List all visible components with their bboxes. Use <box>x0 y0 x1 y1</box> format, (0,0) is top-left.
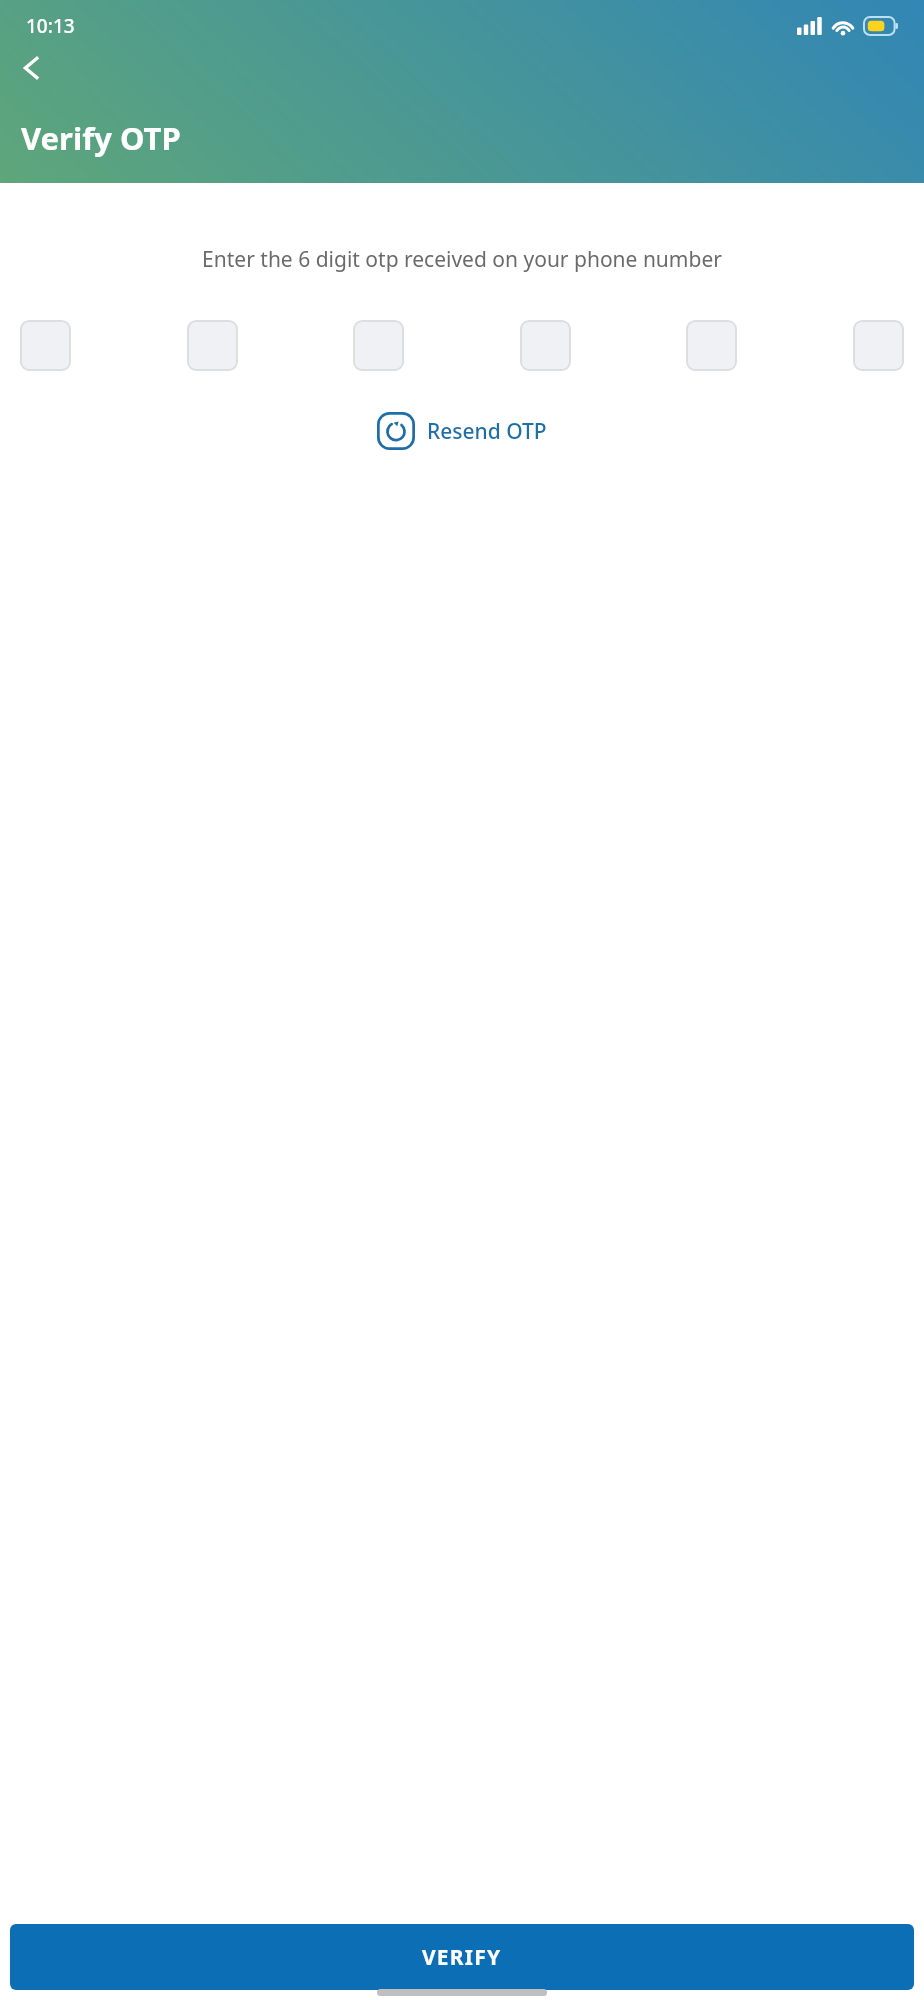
button[interactable]: VERIFY <box>10 1924 914 1990</box>
button[interactable]: OTP digit field <box>520 320 571 371</box>
staticText: Resend OTP <box>427 417 547 446</box>
button[interactable]: OTP digit field <box>353 320 404 371</box>
button[interactable]: OTP digit field <box>853 320 904 371</box>
staticText: Enter the 6 digit otp received on your p… <box>26 245 898 274</box>
staticText: 10:13 <box>26 13 75 39</box>
button[interactable]: OTP digit field <box>20 320 71 371</box>
staticText: VERIFY <box>422 1943 502 1972</box>
staticText: Verify OTP <box>21 117 181 159</box>
button[interactable]: OTP digit field <box>686 320 737 371</box>
button[interactable]: Back <box>8 44 56 92</box>
button[interactable]: Resend OTP <box>369 406 555 456</box>
button[interactable]: OTP digit field <box>187 320 238 371</box>
